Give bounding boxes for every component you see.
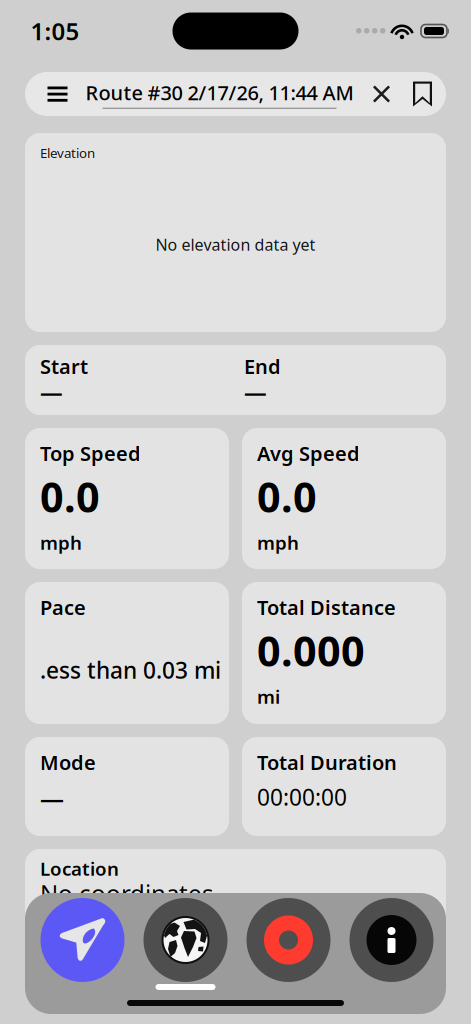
staticText: Location: [40, 856, 119, 881]
staticText: mph: [257, 530, 299, 555]
button[interactable]: Close: [361, 72, 401, 116]
staticText: mph: [40, 530, 82, 555]
staticText: Total Duration: [257, 749, 397, 776]
button[interactable]: Map: [134, 898, 237, 982]
staticText: No coordinates: [40, 877, 213, 909]
button[interactable]: Menu: [37, 72, 77, 116]
staticText: Mode: [40, 749, 96, 776]
staticText: —: [40, 782, 64, 814]
button[interactable]: Record: [237, 898, 340, 982]
staticText: Elevation: [40, 144, 95, 162]
staticText: End: [244, 353, 281, 380]
staticText: 0.0: [40, 469, 100, 524]
button[interactable]: Bookmark: [401, 72, 443, 116]
button[interactable]: Navigate: [31, 898, 134, 982]
staticText: Pace: [40, 594, 86, 621]
staticText: Total Distance: [257, 594, 396, 621]
staticText: Top Speed: [40, 440, 141, 467]
staticText: 1:05: [30, 15, 79, 47]
staticText: Avg Speed: [257, 440, 360, 467]
staticText: Route #30 2/17/26, 11:44 AM: [85, 79, 353, 106]
staticText: 0.0: [257, 469, 317, 524]
staticText: —: [244, 377, 267, 407]
staticText: No elevation data yet: [155, 234, 315, 255]
staticText: 00:00:00: [257, 782, 347, 812]
staticText: 0.000: [257, 623, 365, 678]
button[interactable]: Info: [340, 898, 443, 982]
staticText: Start: [40, 353, 88, 380]
staticText: —: [40, 377, 63, 407]
staticText: .ess than 0.03 mi: [40, 655, 221, 685]
staticText: mi: [257, 684, 280, 709]
